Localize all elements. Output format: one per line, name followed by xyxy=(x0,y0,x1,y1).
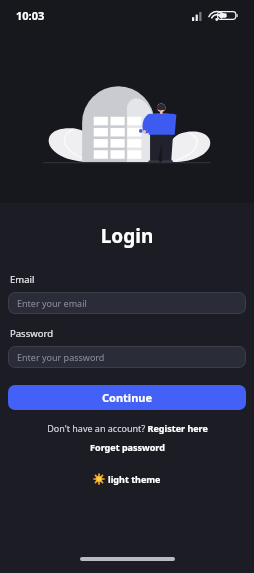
staticText: Enter your email xyxy=(17,297,87,309)
button[interactable]: Enter your email xyxy=(8,292,246,314)
button[interactable]: Enter your password xyxy=(8,346,246,368)
button[interactable]: Continue xyxy=(8,385,246,410)
staticText: Password xyxy=(10,327,53,340)
button[interactable]: Don't have an account? Register here xyxy=(8,422,246,434)
staticText: Email xyxy=(10,273,35,286)
staticText: Login xyxy=(8,223,246,249)
staticText: Don't have an account? Register here xyxy=(47,422,208,434)
button[interactable]: Forget password xyxy=(8,441,246,453)
staticText: Enter your password xyxy=(17,351,105,363)
button[interactable]: light theme xyxy=(88,470,167,488)
staticText: light theme xyxy=(108,473,161,485)
staticText: 10:03 xyxy=(16,8,45,23)
staticText: Continue xyxy=(102,390,153,405)
staticText: Forget password xyxy=(90,441,165,453)
